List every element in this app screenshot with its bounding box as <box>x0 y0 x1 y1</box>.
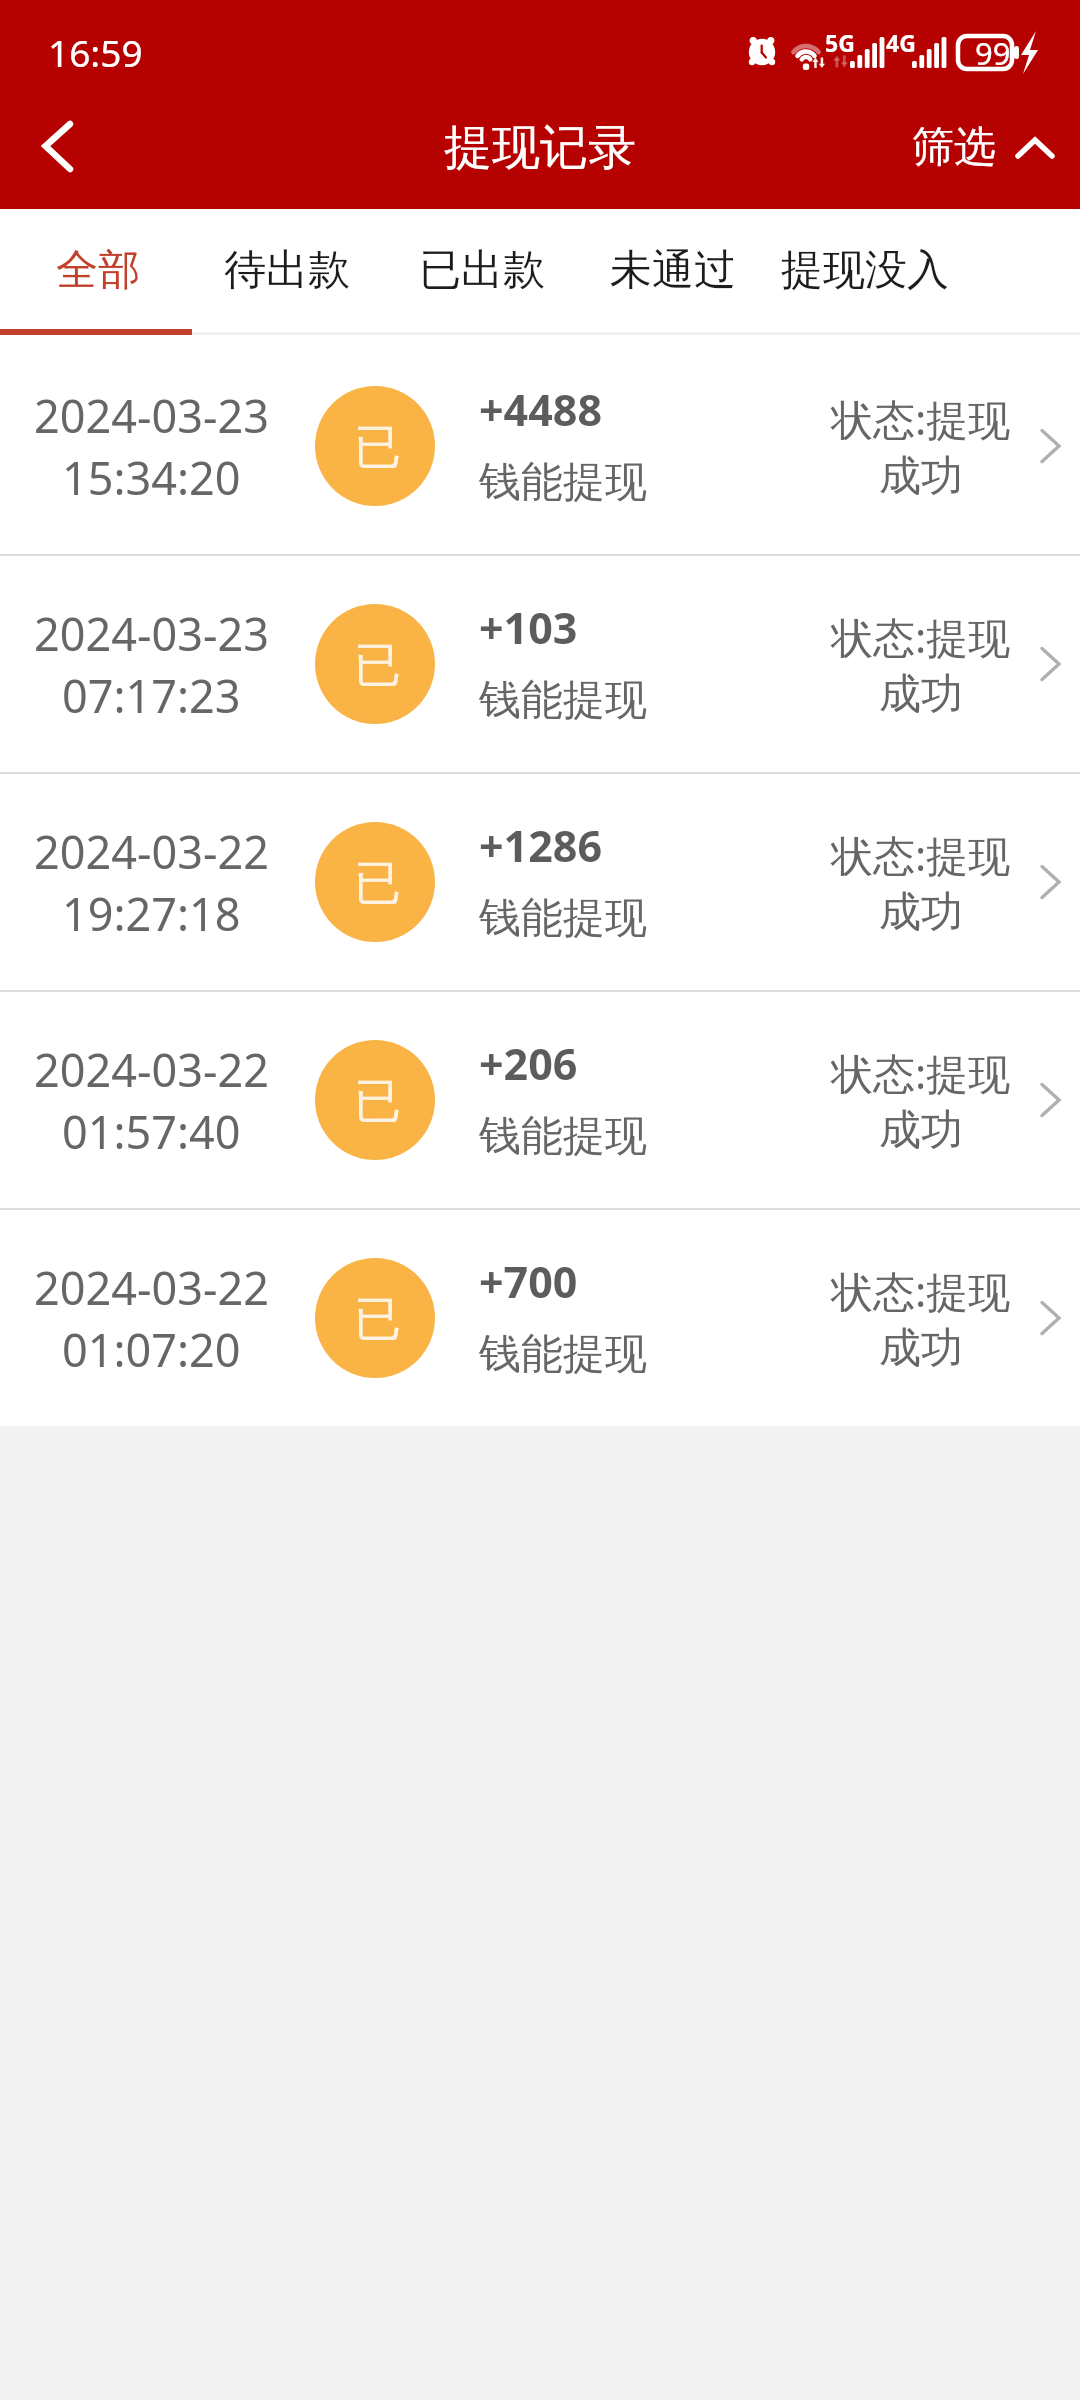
staticText: 01:57:40 <box>62 1101 241 1162</box>
button[interactable]: 筛选 <box>912 115 1080 180</box>
staticText: 待出款 <box>224 244 350 297</box>
staticText: 16:59 <box>48 27 143 77</box>
staticText: 筛选 <box>912 121 996 174</box>
button[interactable]: 提现没入 <box>765 209 965 335</box>
staticText: 状态:提现 <box>831 608 1011 665</box>
staticText: 成功 <box>879 1322 963 1375</box>
staticText: 07:17:23 <box>62 665 241 726</box>
staticText: +1286 <box>479 816 602 875</box>
staticText: 15:34:20 <box>62 447 241 508</box>
button[interactable]: 已出款 <box>400 209 564 335</box>
staticText: 99 <box>975 32 1011 74</box>
staticText: 2024-03-23 <box>34 603 269 664</box>
button[interactable]: 未通过 <box>591 209 755 335</box>
staticText: 已 <box>354 1290 401 1349</box>
staticText: 状态:提现 <box>831 1044 1011 1101</box>
staticText: 未通过 <box>610 244 736 297</box>
staticText: 已 <box>354 418 401 477</box>
button[interactable]: 2024-03-22 <box>0 774 1080 990</box>
button[interactable]: 2024-03-22 <box>0 992 1080 1208</box>
staticText: 已 <box>354 636 401 695</box>
staticText: 2024-03-22 <box>34 821 269 882</box>
staticText: +103 <box>479 598 578 657</box>
staticText: 已 <box>354 1072 401 1131</box>
staticText: 成功 <box>879 668 963 721</box>
staticText: 钱能提现 <box>479 674 647 727</box>
staticText: +4488 <box>479 380 602 439</box>
staticText: 成功 <box>879 886 963 939</box>
button[interactable]: 2024-03-23 <box>0 556 1080 772</box>
staticText: 已 <box>354 854 401 913</box>
staticText: 已出款 <box>419 244 545 297</box>
button[interactable]: 待出款 <box>205 209 369 335</box>
button[interactable]: 全部 <box>38 209 158 335</box>
staticText: 状态:提现 <box>831 1262 1011 1319</box>
staticText: 成功 <box>879 450 963 503</box>
staticText: 状态:提现 <box>831 826 1011 883</box>
staticText: 钱能提现 <box>479 1110 647 1163</box>
staticText: 全部 <box>56 244 140 297</box>
staticText: 2024-03-22 <box>34 1257 269 1318</box>
staticText: 成功 <box>879 1104 963 1157</box>
staticText: 5G <box>825 27 855 58</box>
staticText: 19:27:18 <box>62 883 241 944</box>
button[interactable]: 2024-03-23 <box>0 338 1080 554</box>
staticText: +700 <box>479 1252 578 1311</box>
staticText: 提现记录 <box>444 118 636 178</box>
staticText: 钱能提现 <box>479 456 647 509</box>
staticText: 钱能提现 <box>479 892 647 945</box>
staticText: 提现没入 <box>781 244 949 297</box>
staticText: 状态:提现 <box>831 390 1011 447</box>
staticText: +206 <box>479 1034 578 1093</box>
staticText: 钱能提现 <box>479 1328 647 1381</box>
staticText: 01:07:20 <box>62 1319 241 1380</box>
button[interactable]: Back <box>8 101 100 193</box>
button[interactable]: 2024-03-22 <box>0 1210 1080 1426</box>
staticText: 4G <box>886 27 916 58</box>
staticText: 2024-03-22 <box>34 1039 269 1100</box>
staticText: 2024-03-23 <box>34 385 269 446</box>
